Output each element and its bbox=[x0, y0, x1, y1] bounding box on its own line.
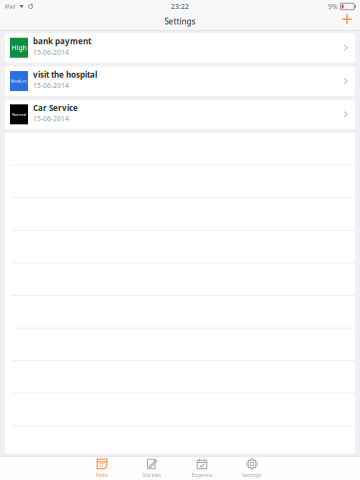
staticText: 9% bbox=[328, 2, 338, 11]
staticText: Normal bbox=[12, 112, 26, 117]
staticText: Settings bbox=[242, 471, 262, 479]
button[interactable]: Note bbox=[77, 457, 127, 479]
button[interactable]: Normal bbox=[5, 100, 355, 129]
staticText: 15-06-2014 bbox=[33, 48, 69, 57]
button[interactable]: Stickies bbox=[127, 457, 177, 479]
button[interactable]: Medium bbox=[5, 66, 355, 96]
staticText: High bbox=[11, 43, 26, 52]
staticText: Medium bbox=[11, 78, 27, 84]
staticText: Stickies bbox=[142, 471, 161, 479]
button[interactable]: Add bbox=[334, 12, 360, 31]
staticText: iPad bbox=[5, 3, 15, 10]
staticText: 15-06-2014 bbox=[33, 81, 69, 90]
staticText: Settings bbox=[164, 16, 195, 27]
staticText: bank payment bbox=[33, 36, 91, 46]
button[interactable]: Settings bbox=[227, 457, 277, 479]
staticText: 15-06-2014 bbox=[33, 114, 69, 123]
staticText: Expense bbox=[191, 471, 212, 479]
staticText: visit the hospital bbox=[33, 69, 97, 80]
staticText: 23:22 bbox=[171, 2, 189, 11]
button[interactable]: Expense bbox=[177, 457, 227, 479]
staticText: Note bbox=[96, 471, 108, 479]
button[interactable]: High bbox=[5, 33, 355, 62]
staticText: Car Service bbox=[33, 102, 78, 113]
